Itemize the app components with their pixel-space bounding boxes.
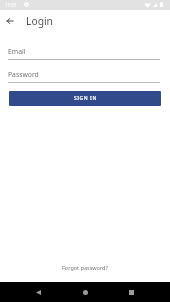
staticText: Password: [8, 70, 39, 79]
staticText: Forgot password?: [62, 264, 108, 271]
staticText: Login: [26, 14, 53, 28]
button[interactable]: Back: [1, 12, 19, 30]
staticText: 11:51: [5, 2, 17, 8]
button[interactable]: Forgot password?: [56, 261, 114, 274]
staticText: Email: [8, 47, 26, 56]
button[interactable]: SIGN IN: [9, 91, 161, 106]
button[interactable]: Recent apps: [121, 282, 141, 302]
button[interactable]: Home: [75, 282, 95, 302]
staticText: SIGN IN: [74, 95, 97, 102]
button[interactable]: [0, 42, 170, 60]
button[interactable]: [0, 65, 170, 84]
button[interactable]: Back: [28, 282, 48, 302]
